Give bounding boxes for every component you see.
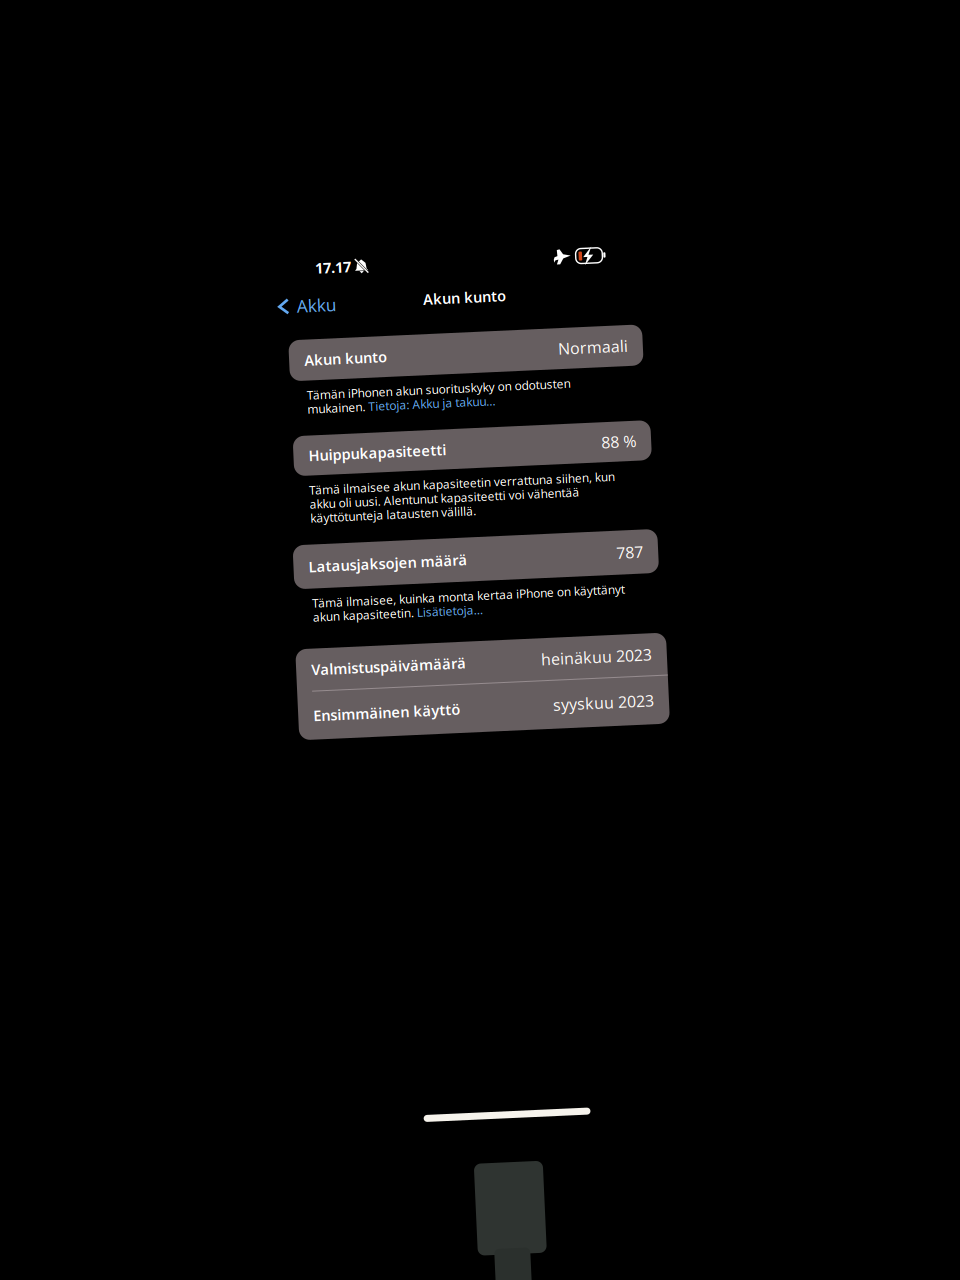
staticText: Akku bbox=[312, 286, 352, 309]
staticText: 787 bbox=[620, 548, 647, 570]
staticText: 17.17 bbox=[332, 251, 368, 271]
staticText: Valmistuspäivämäärä bbox=[310, 652, 465, 672]
staticText: käyttötunteja latausten välillä. bbox=[316, 502, 482, 518]
staticText: Tietoja: Akku ja takuu… bbox=[379, 393, 506, 409]
staticText: mukainen. bbox=[318, 393, 379, 409]
button[interactable]: Valmistuspäivämäärä bbox=[295, 641, 666, 683]
staticText: akun kapasiteetin. bbox=[314, 601, 418, 617]
staticText: heinäkuu 2023 bbox=[540, 651, 651, 673]
button[interactable]: Akku bbox=[291, 286, 354, 310]
staticText: Tämän iPhonen akun suorituskyky on odotu… bbox=[318, 379, 582, 395]
staticText: Latausjaksojen määrä bbox=[312, 549, 471, 569]
staticText: Ensimmäinen käyttö bbox=[310, 698, 457, 718]
staticText: Akun kunto bbox=[317, 343, 400, 362]
staticText: Tämä ilmaisee akun kapasiteetin verrattu… bbox=[316, 474, 622, 490]
staticText: Huippukapasiteetti bbox=[317, 438, 455, 458]
button[interactable]: Akun kunto bbox=[302, 332, 656, 373]
staticText: Normaali bbox=[571, 342, 641, 363]
staticText: Lisätietoja… bbox=[418, 601, 484, 617]
staticText: Akun kunto bbox=[438, 287, 521, 307]
staticText: Tämä ilmaisee, kuinka monta kertaa iPhon… bbox=[314, 587, 627, 603]
button[interactable]: Huippukapasiteetti bbox=[302, 428, 660, 468]
staticText: akku oli uusi. Alentunut kapasiteetti vo… bbox=[316, 488, 586, 504]
button[interactable]: Ensimmäinen käyttö bbox=[295, 684, 666, 732]
staticText: 88 % bbox=[610, 437, 645, 459]
button[interactable]: Latausjaksojen määrä bbox=[297, 537, 662, 581]
staticText: syyskuu 2023 bbox=[550, 697, 651, 719]
